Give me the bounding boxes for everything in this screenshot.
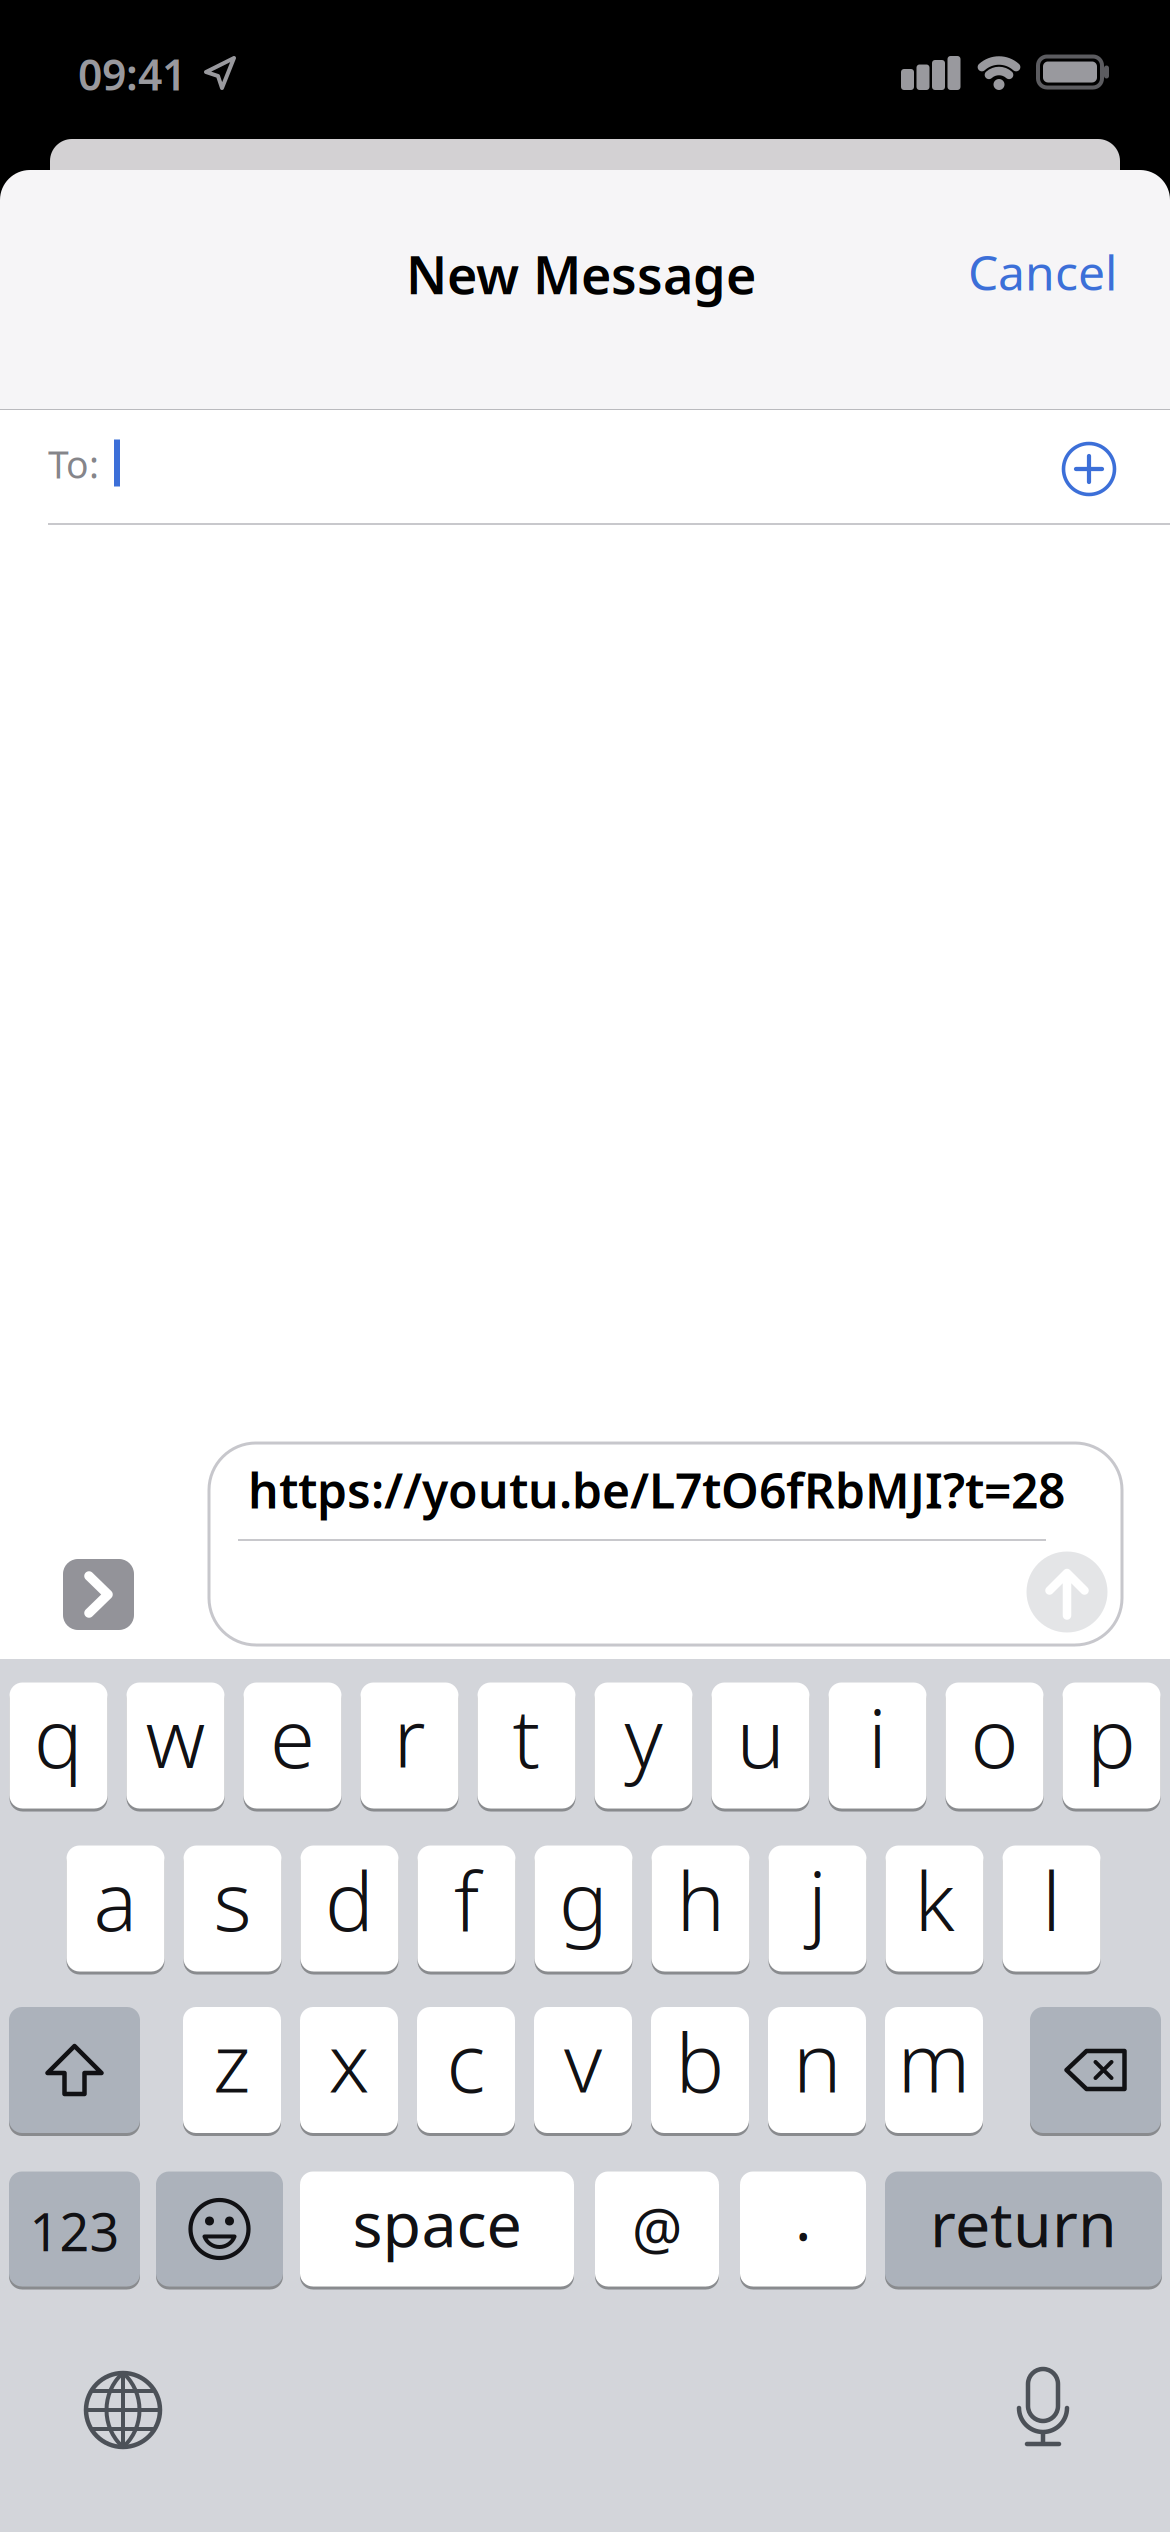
button[interactable]: r bbox=[360, 1682, 458, 1808]
button[interactable]: Delete bbox=[1030, 2007, 1161, 2133]
button[interactable]: s bbox=[183, 1845, 281, 1971]
button[interactable]: t bbox=[477, 1682, 575, 1808]
staticText: 123 bbox=[29, 2196, 119, 2266]
button[interactable]: d bbox=[300, 1845, 398, 1971]
staticText: r bbox=[393, 1682, 425, 1790]
button[interactable]: space bbox=[300, 2171, 574, 2286]
staticText: h bbox=[676, 1845, 724, 1953]
button[interactable]: k bbox=[885, 1845, 983, 1971]
button[interactable]: f bbox=[417, 1845, 515, 1971]
button[interactable]: j bbox=[768, 1845, 866, 1971]
button[interactable]: g bbox=[534, 1845, 632, 1971]
button[interactable]: @ bbox=[595, 2171, 719, 2286]
button[interactable]: Cancel bbox=[968, 240, 1117, 304]
staticText: y bbox=[624, 1682, 662, 1790]
staticText: u bbox=[736, 1682, 784, 1790]
staticText: q bbox=[34, 1682, 83, 1790]
staticText: https://youtu.be/L7tO6fRbMJI?t=28 bbox=[248, 1458, 1065, 1522]
staticText: o bbox=[970, 1682, 1018, 1790]
button[interactable]: n bbox=[768, 2007, 866, 2133]
button[interactable]: a bbox=[66, 1845, 164, 1971]
staticText: i bbox=[868, 1682, 887, 1790]
staticText: n bbox=[793, 2007, 841, 2115]
staticText: a bbox=[93, 1845, 137, 1953]
button[interactable]: h bbox=[651, 1845, 749, 1971]
button[interactable]: i bbox=[828, 1682, 926, 1808]
button[interactable]: u bbox=[711, 1682, 809, 1808]
staticText: f bbox=[454, 1845, 479, 1953]
button[interactable]: m bbox=[885, 2007, 983, 2133]
button[interactable]: w bbox=[126, 1682, 224, 1808]
button[interactable]: y bbox=[594, 1682, 692, 1808]
button[interactable]: z bbox=[183, 2007, 281, 2133]
button[interactable]: o bbox=[945, 1682, 1043, 1808]
staticText: return bbox=[930, 2181, 1117, 2265]
button[interactable]: l bbox=[1002, 1845, 1100, 1971]
staticText: 09:41 bbox=[78, 46, 186, 102]
staticText: space bbox=[352, 2181, 521, 2265]
button[interactable]: Shift bbox=[9, 2007, 140, 2133]
staticText: z bbox=[213, 2007, 251, 2115]
staticText: t bbox=[512, 1682, 540, 1790]
button[interactable]: return bbox=[885, 2171, 1162, 2286]
staticText: w bbox=[145, 1682, 205, 1790]
button[interactable]: c bbox=[417, 2007, 515, 2133]
staticText: New Message bbox=[406, 239, 756, 309]
button[interactable]: Add Contact bbox=[1062, 442, 1116, 496]
button[interactable]: Expand bbox=[63, 1559, 134, 1630]
staticText: l bbox=[1042, 1845, 1061, 1953]
staticText: c bbox=[446, 2007, 485, 2115]
staticText: v bbox=[564, 2007, 602, 2115]
button[interactable]: e bbox=[243, 1682, 341, 1808]
button[interactable]: Dictate bbox=[1016, 2368, 1070, 2448]
staticText: k bbox=[914, 1845, 954, 1953]
button[interactable]: . bbox=[740, 2171, 866, 2286]
staticText: b bbox=[675, 2007, 724, 2115]
staticText: Cancel bbox=[968, 240, 1117, 304]
staticText: m bbox=[897, 2007, 970, 2115]
staticText: @ bbox=[632, 2191, 682, 2265]
staticText: x bbox=[328, 2007, 369, 2115]
button[interactable]: b bbox=[651, 2007, 749, 2133]
button[interactable]: Send bbox=[1026, 1551, 1107, 1632]
staticText: . bbox=[795, 2176, 811, 2258]
staticText: s bbox=[213, 1845, 251, 1953]
staticText: d bbox=[325, 1845, 374, 1953]
button[interactable]: x bbox=[300, 2007, 398, 2133]
button[interactable]: 123 bbox=[9, 2171, 140, 2286]
button[interactable]: v bbox=[534, 2007, 632, 2133]
button[interactable]: Emoji bbox=[156, 2171, 283, 2286]
staticText: e bbox=[270, 1682, 315, 1790]
staticText: g bbox=[559, 1845, 608, 1953]
button[interactable]: p bbox=[1062, 1682, 1160, 1808]
staticText: To: bbox=[48, 439, 99, 489]
staticText: p bbox=[1087, 1682, 1136, 1790]
staticText: j bbox=[808, 1845, 827, 1953]
button[interactable]: Next Keyboard bbox=[85, 2372, 161, 2448]
button[interactable]: q bbox=[9, 1682, 107, 1808]
